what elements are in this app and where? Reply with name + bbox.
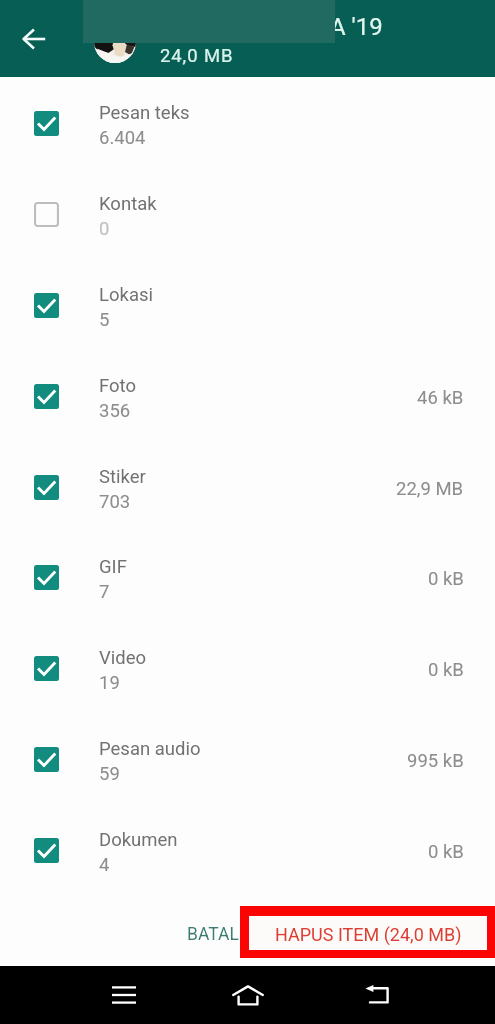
staticText: Pesan teks bbox=[99, 102, 190, 124]
button[interactable]: Recent apps bbox=[98, 974, 150, 1016]
button[interactable]: Back bbox=[14, 19, 54, 59]
staticText: 703 bbox=[99, 491, 131, 513]
button[interactable]: Home bbox=[222, 974, 274, 1016]
button[interactable]: HAPUS ITEM (24,0 MB) bbox=[249, 916, 487, 950]
staticText: GIF bbox=[99, 556, 127, 578]
staticText: 24,0 MB bbox=[160, 45, 234, 67]
staticText: Kontak bbox=[99, 193, 157, 215]
button[interactable]: Lokasi bbox=[0, 259, 495, 350]
staticText: Foto bbox=[99, 375, 137, 397]
button[interactable]: Video bbox=[0, 622, 495, 713]
button[interactable]: Dokumen bbox=[0, 804, 495, 896]
staticText: 22,9 MB bbox=[396, 478, 464, 500]
button[interactable]: Pesan audio bbox=[0, 713, 495, 804]
button[interactable]: Kontak bbox=[0, 168, 495, 259]
button[interactable]: Stiker bbox=[0, 441, 495, 532]
staticText: 0 kB bbox=[428, 659, 464, 681]
staticText: Lokasi bbox=[99, 284, 154, 306]
staticText: Dokumen bbox=[99, 829, 178, 851]
button[interactable]: BATAL bbox=[170, 908, 256, 956]
staticText: A '19 bbox=[330, 13, 383, 41]
staticText: Stiker bbox=[99, 466, 146, 488]
staticText: 995 kB bbox=[407, 750, 464, 772]
button[interactable]: Pesan teks bbox=[0, 77, 495, 168]
staticText: 0 kB bbox=[428, 568, 464, 590]
staticText: Video bbox=[99, 647, 147, 669]
button[interactable]: Back bbox=[351, 974, 403, 1016]
staticText: 356 bbox=[99, 400, 131, 422]
staticText: 0 bbox=[99, 218, 110, 240]
staticText: 0 kB bbox=[428, 841, 464, 863]
staticText: 7 bbox=[99, 581, 110, 603]
staticText: BATAL bbox=[187, 924, 239, 945]
button[interactable]: Foto bbox=[0, 350, 495, 441]
staticText: 6.404 bbox=[99, 127, 146, 149]
staticText: HAPUS ITEM (24,0 MB) bbox=[275, 924, 462, 945]
staticText: 5 bbox=[99, 309, 110, 331]
staticText: 59 bbox=[99, 763, 120, 785]
staticText: 19 bbox=[99, 672, 120, 694]
staticText: Pesan audio bbox=[99, 738, 201, 760]
button[interactable]: GIF bbox=[0, 531, 495, 622]
staticText: 46 kB bbox=[417, 387, 464, 409]
staticText: 4 bbox=[99, 854, 110, 876]
